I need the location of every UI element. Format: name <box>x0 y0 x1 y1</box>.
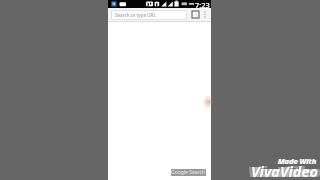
staticText: Made With <box>278 156 317 166</box>
staticText: VivaVideo <box>251 161 318 180</box>
staticText: Search or type URL <box>115 12 156 18</box>
staticText: Made With <box>279 156 318 166</box>
button[interactable]: More options <box>200 8 209 21</box>
button[interactable]: Tabs <box>190 8 200 21</box>
staticText: Google Search <box>171 169 206 176</box>
staticText: VivaVideo <box>254 161 320 180</box>
staticText: 7:23 <box>195 0 210 8</box>
button[interactable]: Google Search <box>171 169 206 176</box>
staticText: Made With <box>277 156 316 166</box>
button[interactable]: Search or type URL <box>111 10 187 20</box>
staticText: VivaVideo <box>248 161 315 180</box>
